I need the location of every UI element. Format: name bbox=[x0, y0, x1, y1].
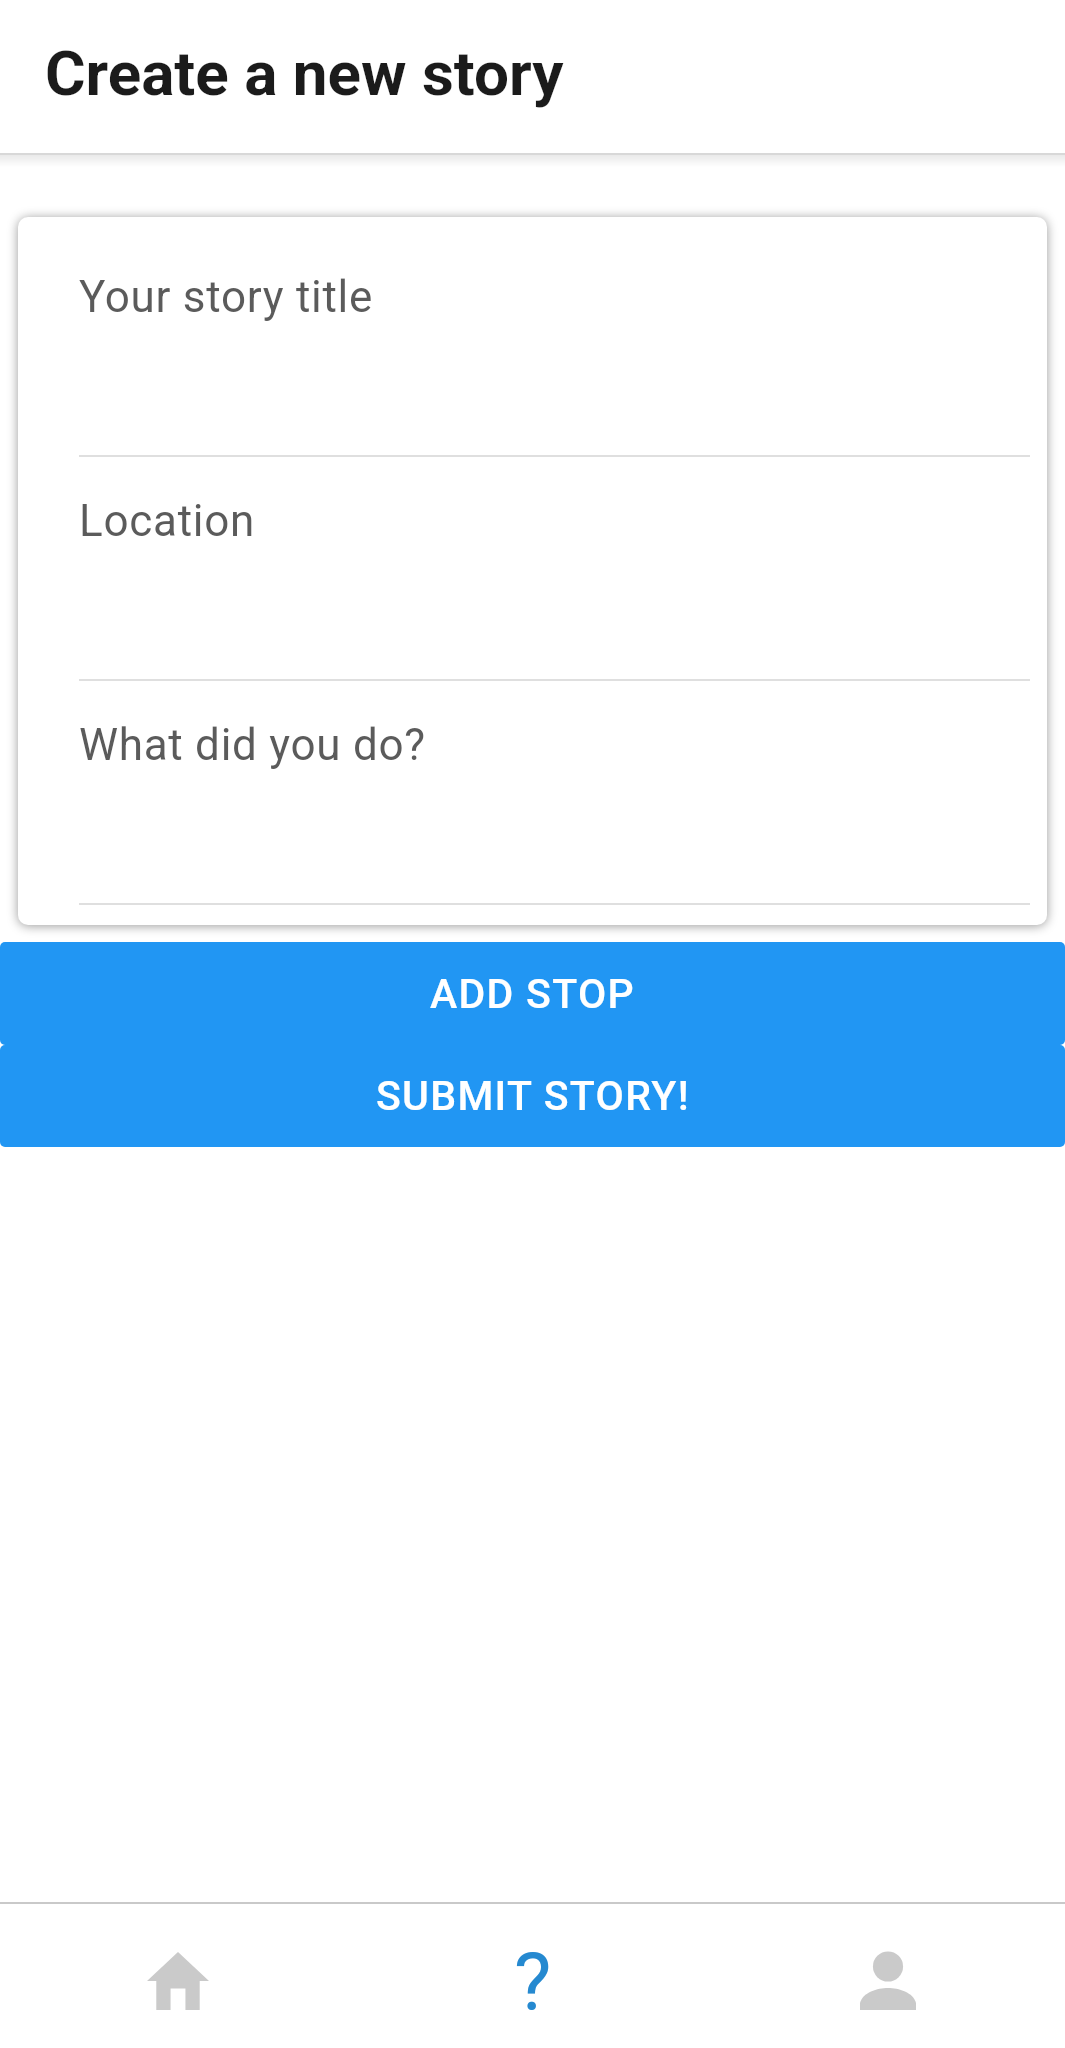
button[interactable]: SUBMIT STORY! bbox=[0, 1045, 1065, 1147]
button[interactable]: Your story title bbox=[79, 233, 1030, 457]
staticText: SUBMIT STORY! bbox=[376, 1072, 690, 1120]
button[interactable]: Location bbox=[79, 457, 1030, 681]
button[interactable]: Profile bbox=[710, 1904, 1065, 2048]
button[interactable]: Home bbox=[0, 1904, 355, 2048]
staticText: ADD STOP bbox=[430, 970, 635, 1018]
button[interactable]: Help bbox=[355, 1904, 710, 2048]
staticText: Your story title bbox=[79, 271, 374, 323]
button[interactable]: ADD STOP bbox=[0, 942, 1065, 1045]
staticText: Location bbox=[79, 495, 256, 547]
button[interactable]: What did you do? bbox=[79, 681, 1030, 905]
staticText: What did you do? bbox=[79, 719, 426, 771]
staticText: Create a new story bbox=[45, 37, 564, 110]
staticText: ? bbox=[514, 1937, 552, 2030]
